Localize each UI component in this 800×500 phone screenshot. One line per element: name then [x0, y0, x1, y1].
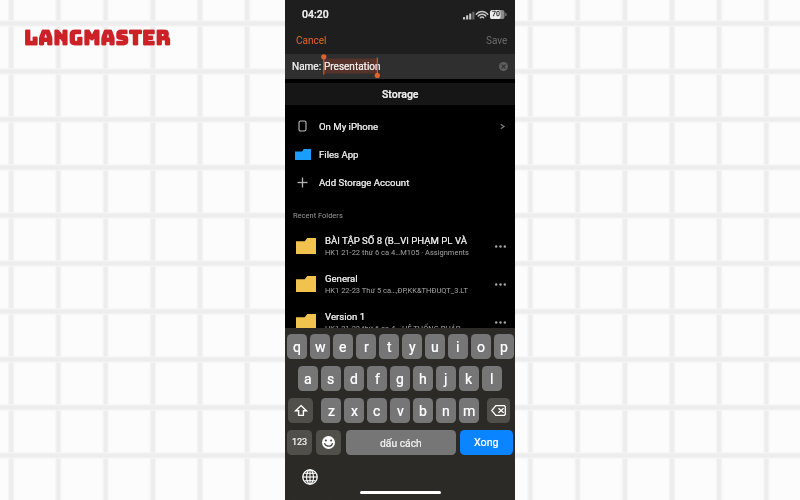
button[interactable]: a: [298, 366, 318, 391]
staticText: On My iPhone: [319, 121, 379, 132]
other: Backspace: [491, 405, 506, 416]
staticText: b: [419, 403, 427, 419]
staticText: Save: [486, 35, 508, 47]
staticText: w: [315, 339, 326, 355]
button[interactable]: v: [390, 398, 410, 423]
staticText: o: [477, 339, 485, 355]
button[interactable]: n: [436, 398, 456, 423]
staticText: Recent Folders: [293, 211, 343, 220]
button[interactable]: Shift: [288, 398, 313, 423]
staticText: n: [442, 403, 450, 419]
button[interactable]: e: [333, 334, 353, 359]
staticText: f: [375, 371, 380, 387]
other: Shift: [295, 405, 307, 416]
staticText: BÀI TẬP SỐ 8 (B…VI PHẠM PL VÀ: [325, 235, 467, 246]
staticText: Xong: [474, 436, 499, 449]
button[interactable]: b: [413, 398, 433, 423]
button[interactable]: s: [321, 366, 341, 391]
button[interactable]: More options: [493, 315, 507, 329]
button[interactable]: y: [402, 334, 422, 359]
staticText: Files App: [319, 149, 359, 160]
staticText: m: [463, 403, 476, 419]
staticText: r: [364, 339, 369, 355]
staticText: y: [409, 339, 416, 355]
button[interactable]: Emoji: [316, 430, 341, 455]
staticText: Presentation: [324, 61, 381, 73]
staticText: HK1 21-22 thứ 6 ca 4…M105 · Assignments: [325, 248, 469, 257]
button[interactable]: o: [471, 334, 491, 359]
staticText: LANGMASTER: [24, 24, 171, 51]
button[interactable]: More options: [493, 239, 507, 253]
button[interactable]: l: [482, 366, 502, 391]
button[interactable]: q: [287, 334, 307, 359]
staticText: j: [444, 371, 448, 387]
staticText: z: [328, 403, 335, 419]
staticText: HK1 22-23 Thứ 5 ca…,ĐP,KK&THĐUQT_3.LT: [325, 286, 468, 295]
staticText: 123: [292, 437, 308, 448]
staticText: l: [490, 371, 494, 387]
button[interactable]: h: [413, 366, 433, 391]
button[interactable]: x: [344, 398, 364, 423]
staticText: v: [397, 403, 404, 419]
staticText: Add Storage Account: [319, 177, 410, 188]
staticText: HK1 21-22 thứ 6 ca 4… HỆ THỐNG PHÁP: [325, 324, 461, 333]
staticText: General: [325, 273, 358, 284]
button[interactable]: f: [367, 366, 387, 391]
staticText: u: [431, 339, 439, 355]
button[interactable]: Change language: [302, 469, 318, 485]
button[interactable]: More options: [493, 277, 507, 291]
button[interactable]: Add Storage Account: [285, 168, 515, 196]
staticText: Storage: [382, 88, 419, 100]
staticText: d: [350, 371, 358, 387]
button[interactable]: k: [459, 366, 479, 391]
button[interactable]: d: [344, 366, 364, 391]
staticText: s: [327, 371, 335, 387]
button[interactable]: Cancel: [285, 30, 338, 52]
button[interactable]: p: [494, 334, 514, 359]
staticText: c: [373, 403, 381, 419]
button[interactable]: j: [436, 366, 456, 391]
staticText: dấu cách: [380, 437, 422, 449]
staticText: x: [351, 403, 358, 419]
staticText: t: [387, 339, 392, 355]
button[interactable]: c: [367, 398, 387, 423]
button[interactable]: Files App: [285, 140, 515, 168]
staticText: 04:20: [302, 8, 329, 20]
button[interactable]: z: [321, 398, 341, 423]
button[interactable]: General: [285, 265, 515, 303]
button[interactable]: m: [459, 398, 479, 423]
button[interactable]: u: [425, 334, 445, 359]
staticText: h: [419, 371, 427, 387]
staticText: q: [293, 339, 301, 355]
staticText: a: [304, 371, 312, 387]
button[interactable]: dấu cách: [346, 430, 456, 455]
button[interactable]: On My iPhone: [285, 112, 515, 140]
button[interactable]: Version 1: [285, 303, 515, 341]
button[interactable]: i: [448, 334, 468, 359]
staticText: 70: [492, 10, 500, 18]
button[interactable]: t: [379, 334, 399, 359]
staticText: g: [396, 371, 404, 387]
button[interactable]: Backspace: [487, 398, 510, 423]
button[interactable]: w: [310, 334, 330, 359]
button[interactable]: g: [390, 366, 410, 391]
button[interactable]: Xong: [460, 430, 513, 455]
staticText: e: [339, 339, 347, 355]
button[interactable]: r: [356, 334, 376, 359]
staticText: Version 1: [325, 311, 366, 322]
button[interactable]: Save: [477, 30, 515, 52]
button[interactable]: BÀI TẬP SỐ 8 (B…VI PHẠM PL VÀ: [285, 227, 515, 265]
button[interactable]: Clear text: [499, 62, 508, 71]
button[interactable]: 123: [287, 430, 312, 455]
staticText: p: [500, 339, 508, 355]
staticText: k: [465, 371, 473, 387]
staticText: i: [456, 339, 460, 355]
staticText: Name:: [292, 61, 322, 73]
staticText: Cancel: [296, 35, 327, 47]
